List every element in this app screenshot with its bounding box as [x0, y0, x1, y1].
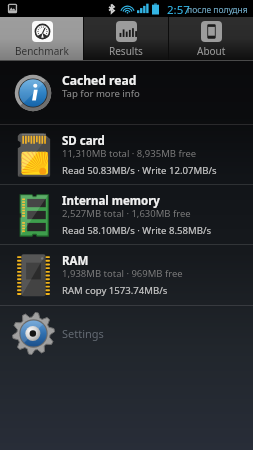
staticText: после полудня: [187, 4, 248, 16]
button[interactable]: About: [169, 17, 253, 60]
staticText: 2:57: [167, 2, 190, 18]
staticText: Cached read: [62, 72, 137, 88]
staticText: Read 50.83MB/s · Write 12.07MB/s: [62, 164, 217, 177]
button[interactable]: Settings: [0, 306, 253, 360]
staticText: RAM: [62, 253, 89, 269]
staticText: 11,310MB total · 8,935MB free: [62, 147, 197, 160]
staticText: 2,527MB total · 1,630MB free: [62, 207, 191, 220]
button[interactable]: Cached read: [0, 61, 253, 124]
staticText: SD card: [62, 133, 105, 149]
staticText: Read 58.10MB/s · Write 8.58MB/s: [62, 224, 212, 237]
button[interactable]: RAM: [0, 245, 253, 305]
staticText: RAM copy 1573.74MB/s: [62, 284, 168, 297]
staticText: Internal memory: [62, 193, 160, 209]
staticText: 1,938MB total · 969MB free: [62, 267, 183, 280]
staticText: Benchmark: [15, 44, 69, 58]
staticText: Tap for more info: [62, 87, 140, 100]
staticText: Results: [109, 44, 143, 58]
staticText: About: [197, 44, 226, 58]
staticText: Settings: [62, 326, 104, 341]
button[interactable]: Internal memory: [0, 185, 253, 244]
button[interactable]: SD card: [0, 125, 253, 184]
button[interactable]: Results: [84, 17, 168, 60]
button[interactable]: Benchmark: [0, 17, 83, 60]
